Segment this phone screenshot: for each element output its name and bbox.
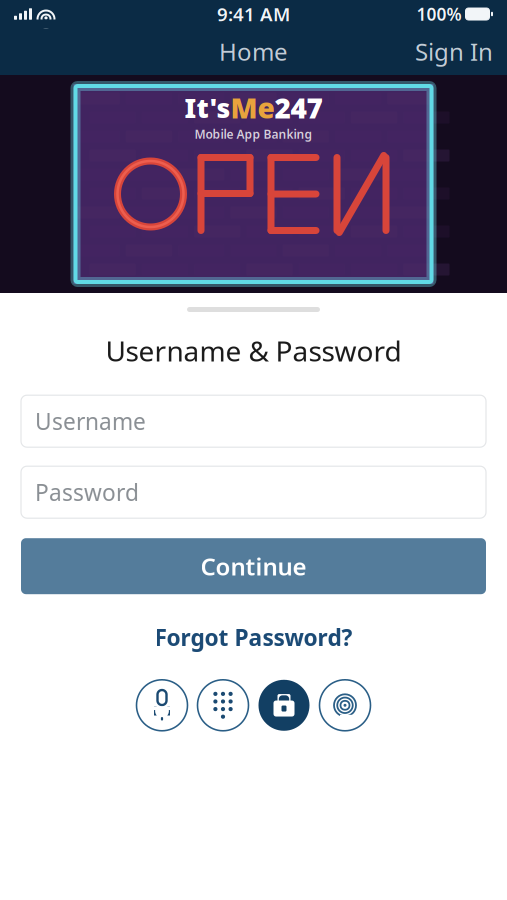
staticText: Password: [35, 477, 139, 507]
staticText: Mobile App Banking: [194, 126, 312, 142]
staticText: It's: [184, 90, 230, 125]
button[interactable]: Continue: [21, 538, 486, 594]
button[interactable]: Fingerprint sign in: [317, 677, 373, 733]
staticText: Forgot Password?: [154, 622, 352, 652]
staticText: Username: [35, 406, 146, 436]
staticText: Me: [230, 89, 274, 126]
button[interactable]: Password sign in: [256, 677, 312, 733]
staticText: 9:41 AM: [217, 2, 290, 26]
button[interactable]: PIN sign in: [195, 677, 251, 733]
staticText: Continue: [200, 550, 306, 582]
staticText: 100%: [416, 2, 461, 25]
staticText: Home: [219, 36, 288, 67]
button[interactable]: Home: [205, 28, 302, 75]
staticText: Username & Password: [105, 332, 401, 369]
button[interactable]: Forgot Password?: [138, 614, 368, 660]
staticText: 247: [274, 89, 322, 126]
button[interactable]: Voice sign in: [134, 677, 190, 733]
staticText: Sign In: [415, 36, 493, 67]
button[interactable]: Sign In: [401, 28, 507, 75]
